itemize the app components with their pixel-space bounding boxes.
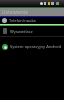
button[interactable]: Telefon/nauka [0,17,64,24]
staticText: Telefon/nauka [9,18,36,23]
button[interactable]: Wyswietlacz [0,26,64,36]
staticText: Ustawienia [2,9,28,16]
staticText: System operacyjny Android [10,44,62,49]
button[interactable]: System operacyjny Android [0,43,64,50]
staticText: Wyswietlacz [10,29,33,34]
